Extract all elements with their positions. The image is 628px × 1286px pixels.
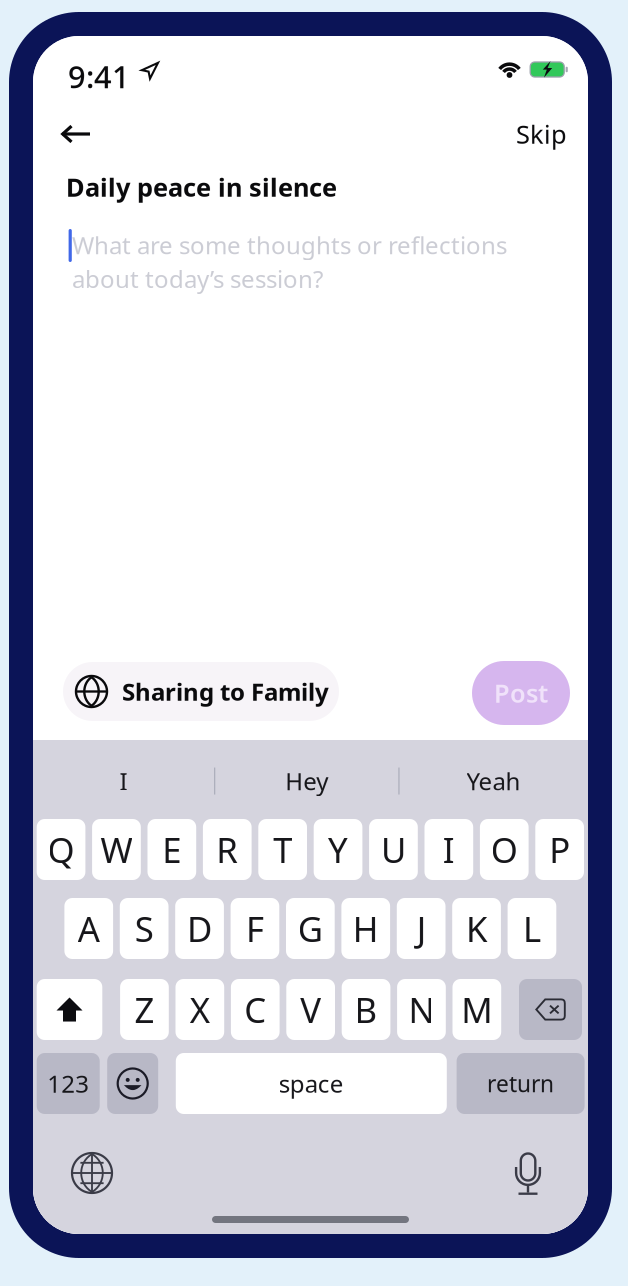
staticText: M (461, 986, 492, 1032)
staticText: W (100, 826, 132, 872)
button[interactable]: Switch keyboard (63, 1147, 121, 1199)
staticText: J (417, 905, 426, 951)
button[interactable]: space (176, 1053, 447, 1114)
button[interactable]: P (535, 819, 584, 880)
staticText: Hey (285, 765, 328, 797)
staticText: F (246, 905, 264, 951)
staticText: C (244, 986, 266, 1032)
button[interactable]: K (452, 898, 501, 959)
button[interactable]: Post (472, 661, 570, 725)
button[interactable]: Back (48, 109, 104, 159)
staticText: return (487, 1068, 554, 1098)
staticText: I (443, 826, 455, 872)
staticText: Z (134, 986, 154, 1032)
button[interactable]: V (286, 979, 335, 1040)
button[interactable]: G (286, 898, 335, 959)
button[interactable]: O (480, 819, 529, 880)
button[interactable]: Sharing to Family (63, 662, 339, 721)
staticText: D (187, 905, 212, 951)
button[interactable]: L (508, 898, 556, 959)
button[interactable]: I (33, 756, 214, 806)
button[interactable]: B (342, 979, 390, 1040)
button[interactable]: X (175, 979, 224, 1040)
button[interactable]: S (120, 898, 168, 959)
button[interactable]: Q (37, 819, 85, 880)
staticText: Q (48, 826, 75, 872)
staticText: K (466, 905, 487, 951)
staticText: X (190, 986, 210, 1032)
staticText: 9:41 (68, 56, 130, 97)
button[interactable]: R (203, 819, 252, 880)
staticText: about today’s session? (72, 263, 323, 295)
staticText: Sharing to Family (122, 676, 329, 707)
staticText: N (408, 986, 434, 1032)
staticText: I (119, 765, 127, 797)
staticText: V (300, 986, 321, 1032)
staticText: B (355, 986, 378, 1032)
staticText: E (162, 826, 181, 872)
button[interactable]: I (424, 819, 473, 880)
staticText: Yeah (467, 765, 521, 797)
staticText: R (216, 826, 238, 872)
button[interactable]: H (341, 898, 390, 959)
button[interactable]: return (457, 1053, 585, 1114)
staticText: U (381, 826, 406, 872)
staticText: Post (494, 676, 548, 710)
button[interactable]: Delete (519, 979, 582, 1040)
staticText: O (491, 826, 518, 872)
button[interactable]: F (231, 898, 279, 959)
button[interactable]: Dictate (498, 1141, 556, 1193)
button[interactable]: 123 (37, 1053, 100, 1114)
button[interactable]: A (64, 898, 113, 959)
button[interactable]: D (175, 898, 224, 959)
button[interactable]: Emoji (107, 1053, 158, 1114)
button[interactable]: Y (314, 819, 362, 880)
button[interactable]: Yeah (400, 756, 588, 806)
staticText: Y (328, 826, 348, 872)
staticText: A (78, 905, 100, 951)
button[interactable]: J (397, 898, 445, 959)
button[interactable]: Hey (215, 756, 398, 806)
button[interactable]: T (258, 819, 307, 880)
staticText: G (298, 905, 323, 951)
button[interactable]: Z (120, 979, 169, 1040)
button[interactable]: N (397, 979, 446, 1040)
staticText: 123 (47, 1068, 89, 1099)
staticText: What are some thoughts or reflections (72, 229, 507, 261)
staticText: T (273, 826, 292, 872)
staticText: Daily peace in silence (66, 170, 337, 204)
button[interactable]: Shift (37, 979, 102, 1040)
button[interactable]: M (452, 979, 501, 1040)
button[interactable]: W (92, 819, 141, 880)
staticText: S (135, 905, 154, 951)
button[interactable]: Skip (508, 109, 575, 159)
staticText: L (523, 905, 541, 951)
staticText: Skip (516, 117, 567, 151)
staticText: space (279, 1068, 344, 1099)
button[interactable]: C (231, 979, 280, 1040)
staticText: P (549, 826, 570, 872)
staticText: H (353, 905, 379, 951)
button[interactable]: E (147, 819, 196, 880)
button[interactable]: U (369, 819, 418, 880)
